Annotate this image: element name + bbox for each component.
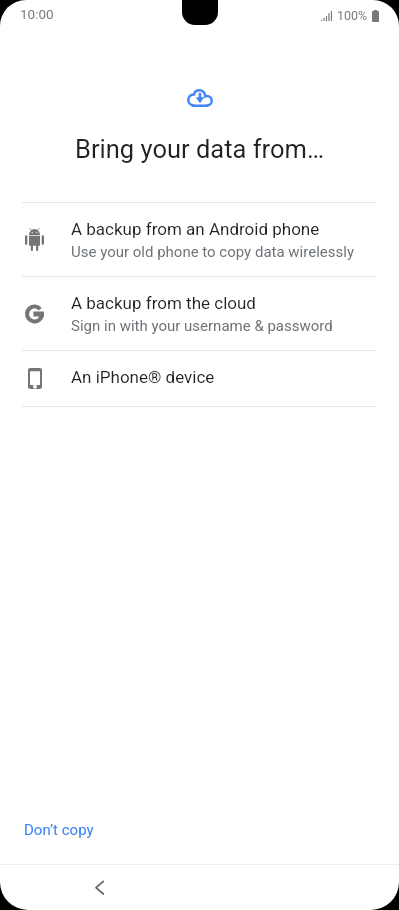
staticText: Use your old phone to copy data wireless… <box>71 243 354 261</box>
staticText: Sign in with your username & password <box>71 317 333 335</box>
button[interactable]: A backup from the cloud <box>0 277 399 350</box>
staticText: Don’t copy <box>24 821 94 839</box>
staticText: A backup from the cloud <box>71 293 256 313</box>
button[interactable]: Back <box>76 865 124 910</box>
staticText: A backup from an Android phone <box>71 219 320 239</box>
button[interactable]: An iPhone® device <box>0 351 399 406</box>
staticText: 10:00 <box>20 6 54 22</box>
button[interactable]: A backup from an Android phone <box>0 203 399 276</box>
staticText: 100% <box>337 8 368 23</box>
staticText: An iPhone® device <box>71 367 215 387</box>
button[interactable]: Don’t copy <box>0 813 118 847</box>
staticText: Bring your data from… <box>0 134 399 164</box>
